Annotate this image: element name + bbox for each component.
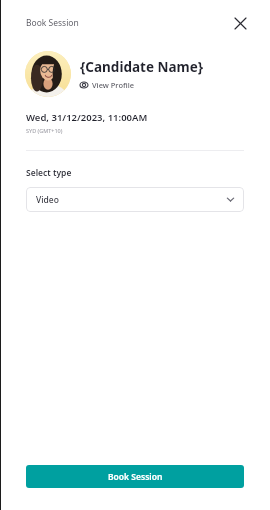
button[interactable]: Book Session [26,465,244,488]
staticText: Book Session [108,471,163,483]
staticText: View Profile [92,80,134,90]
button[interactable]: Close [228,11,252,35]
staticText: Video [36,194,59,206]
staticText: {Candidate Name} [80,58,204,76]
staticText: Book Session [26,17,79,29]
staticText: SYD (GMT+10) [26,127,63,134]
button[interactable]: View Profile [80,80,134,90]
staticText: Select type [26,167,72,179]
button[interactable]: Video [26,187,244,212]
staticText: Wed, 31/12/2023, 11:00AM [26,111,148,124]
